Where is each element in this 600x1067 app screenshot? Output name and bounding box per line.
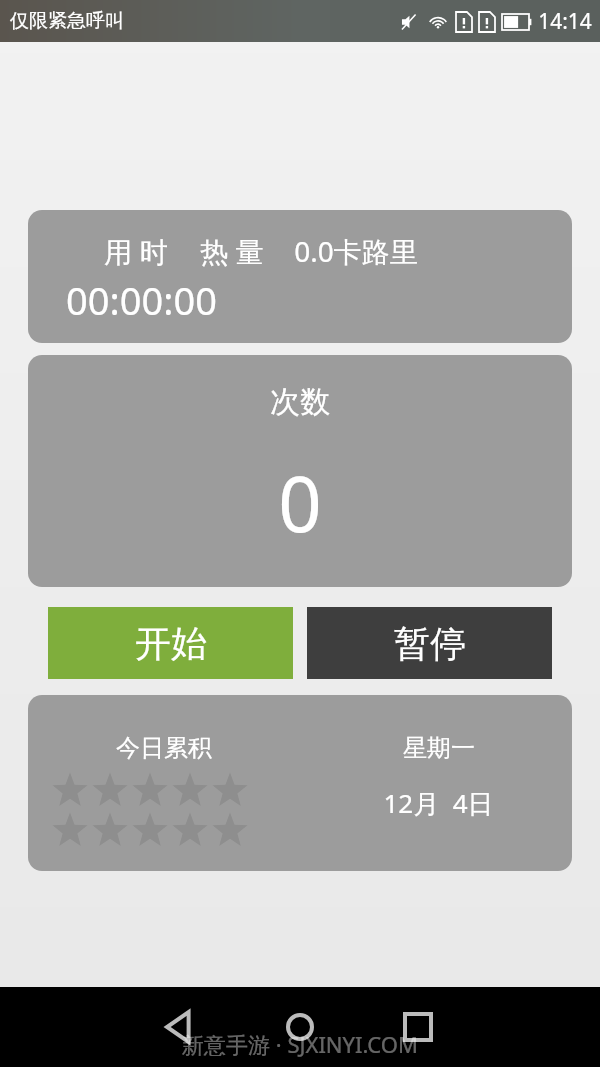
staticText: 用 时 [104, 232, 168, 270]
staticText: 次数 [270, 383, 330, 421]
staticText: 14:14 [538, 7, 592, 36]
button[interactable]: 次数 [28, 355, 572, 587]
staticText: 0 [278, 451, 322, 555]
button[interactable]: 开始 [48, 607, 293, 679]
staticText: 00:00:00 [66, 274, 217, 326]
staticText: 0.0卡路里 [294, 232, 418, 270]
button[interactable]: 暂停 [307, 607, 552, 679]
staticText: 今日累积 [116, 733, 212, 763]
button[interactable]: Recent apps [382, 991, 454, 1063]
staticText: 热 量 [200, 232, 264, 270]
button[interactable]: Home [264, 991, 336, 1063]
button[interactable]: 今日累积 [28, 695, 572, 871]
staticText: 仅限紧急呼叫 [10, 9, 124, 33]
button[interactable]: 用 时 [28, 210, 572, 343]
staticText: 12月 4日 [383, 785, 494, 821]
staticText: 暂停 [394, 621, 466, 666]
staticText: 星期一 [403, 733, 475, 763]
button[interactable]: Back [146, 991, 218, 1063]
staticText: 新意手游 · SJXINYI.COM [182, 1029, 418, 1059]
staticText: 开始 [135, 621, 207, 666]
